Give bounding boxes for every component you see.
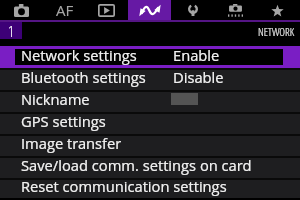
button[interactable]: Save/load comm. settings on card <box>0 156 300 178</box>
staticText: Nickname <box>21 89 90 109</box>
button[interactable]: Playback <box>85 0 128 20</box>
staticText: 1 <box>8 21 14 38</box>
button[interactable]: Nickname <box>0 90 300 112</box>
staticText: Save/load comm. settings on card <box>21 155 252 175</box>
staticText: Image transfer <box>21 133 122 153</box>
button[interactable]: Autofocus <box>42 0 85 20</box>
button[interactable]: Image transfer <box>0 134 300 156</box>
button[interactable]: Custom functions <box>214 0 257 20</box>
button[interactable]: My Menu <box>257 0 300 20</box>
staticText: GPS settings <box>21 111 106 131</box>
button[interactable]: Setup <box>171 0 214 20</box>
button[interactable]: 1 <box>0 22 22 39</box>
staticText: Disable <box>173 67 224 87</box>
button[interactable]: Shooting <box>0 0 42 20</box>
staticText: AF <box>56 0 74 20</box>
staticText: NETWORK <box>258 24 295 39</box>
button[interactable]: GPS settings <box>0 112 300 134</box>
staticText: Network settings <box>21 45 137 65</box>
staticText: Bluetooth settings <box>21 67 146 87</box>
button[interactable]: Network <box>128 0 171 20</box>
button[interactable]: Reset communication settings <box>0 178 300 198</box>
staticText: Reset communication settings <box>21 176 227 196</box>
button[interactable]: Network settings <box>0 46 300 68</box>
staticText: Enable <box>173 45 220 65</box>
button[interactable]: Bluetooth settings <box>0 68 300 90</box>
